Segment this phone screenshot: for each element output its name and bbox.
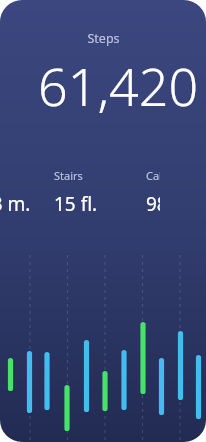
button[interactable]: Distance (0, 168, 54, 217)
button[interactable]: Stairs (54, 168, 146, 217)
staticText: 980 cal. (146, 191, 160, 217)
staticText: 15 fl. (54, 191, 98, 217)
staticText: 61,420 (38, 50, 199, 120)
staticText: 1,293 m. (0, 191, 31, 217)
staticText: Steps (87, 30, 120, 47)
button[interactable]: Calories (146, 168, 160, 217)
button[interactable]: Steps (0, 30, 206, 47)
staticText: Stairs (54, 168, 83, 183)
staticText: Calories (146, 168, 160, 183)
